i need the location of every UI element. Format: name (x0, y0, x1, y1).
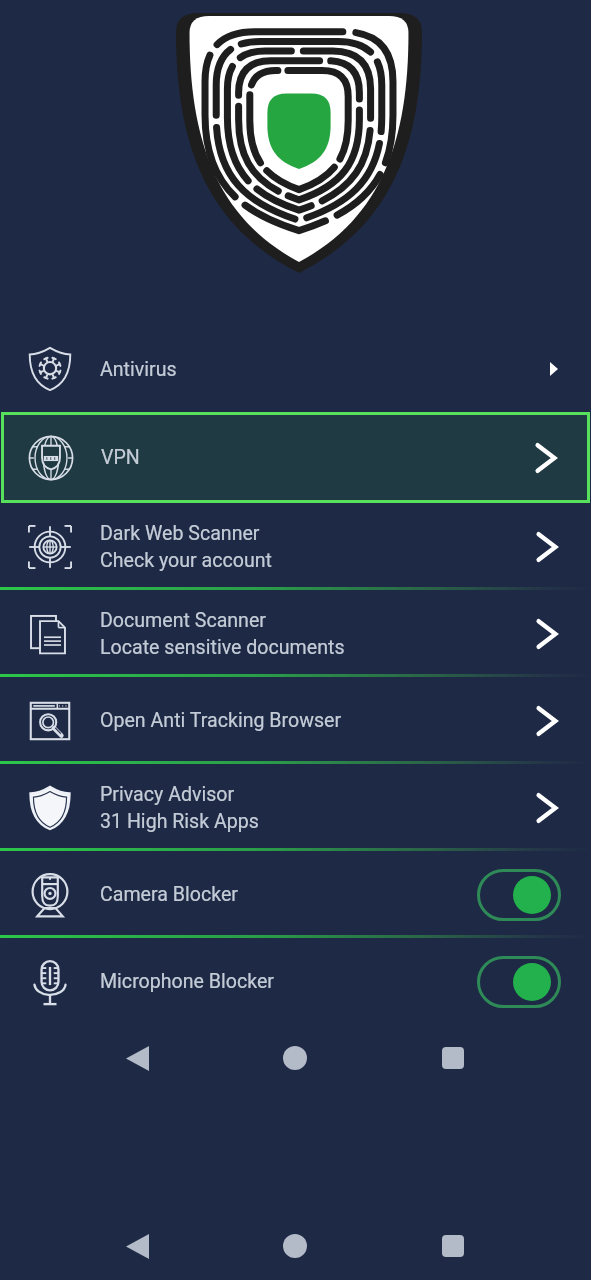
button[interactable]: Open Anti Tracking Browser (0, 677, 591, 764)
button[interactable]: VPN (1, 412, 590, 503)
button[interactable]: Privacy Advisor (0, 764, 591, 851)
staticText: Camera Blocker (100, 883, 477, 906)
button[interactable]: Home (263, 1214, 327, 1278)
staticText: Open Anti Tracking Browser (100, 709, 342, 732)
button[interactable]: Dark Web Scanner (0, 503, 591, 590)
staticText: Document Scanner (100, 609, 266, 632)
button[interactable]: Recent apps (421, 1026, 485, 1090)
button[interactable]: Microphone Blocker (0, 938, 591, 1025)
button[interactable]: Back (105, 1214, 169, 1278)
button[interactable]: Recent apps (421, 1214, 485, 1278)
staticText: Privacy Advisor (100, 783, 235, 806)
staticText: Antivirus (100, 358, 177, 381)
staticText: VPN (101, 446, 140, 469)
button[interactable]: Home (263, 1026, 327, 1090)
staticText: Check your account (100, 549, 272, 572)
button[interactable]: Back (105, 1026, 169, 1090)
button[interactable]: Camera Blocker (0, 851, 591, 938)
staticText: Locate sensitive documents (100, 636, 345, 659)
staticText: Microphone Blocker (100, 970, 477, 993)
button[interactable]: Antivirus (0, 326, 591, 412)
staticText: Dark Web Scanner (100, 522, 260, 545)
staticText: 31 High Risk Apps (100, 810, 259, 833)
button[interactable]: Document Scanner (0, 590, 591, 677)
